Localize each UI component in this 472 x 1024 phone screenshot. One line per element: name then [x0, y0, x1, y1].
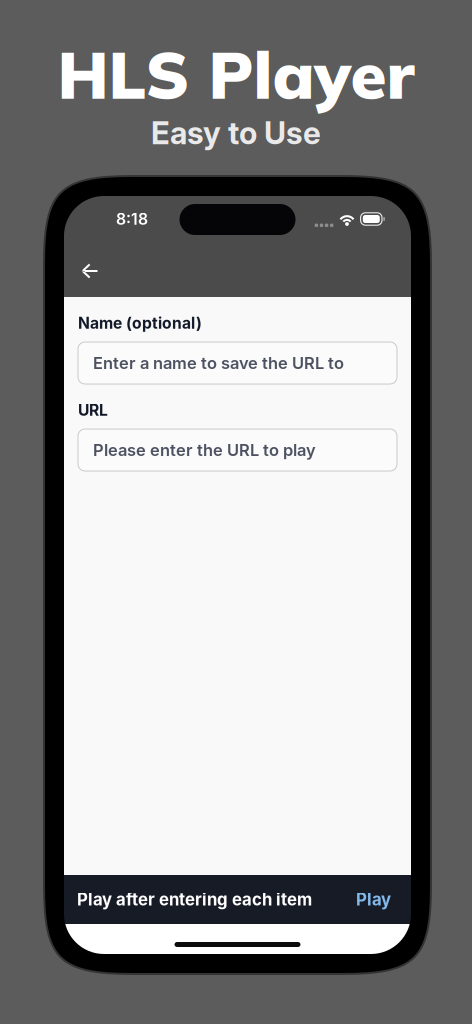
staticText: URL: [78, 401, 108, 419]
button[interactable]: Back: [68, 249, 112, 293]
button[interactable]: Please enter the URL to play: [78, 429, 397, 471]
staticText: Please enter the URL to play: [93, 440, 316, 460]
staticText: Play: [356, 889, 391, 910]
staticText: 8:18: [116, 209, 148, 228]
staticText: Enter a name to save the URL to: [93, 353, 344, 373]
staticText: Play after entering each item: [77, 889, 312, 910]
staticText: HLS Player: [57, 33, 414, 115]
staticText: Name (optional): [78, 314, 202, 332]
staticText: Easy to Use: [151, 114, 321, 151]
button[interactable]: Enter a name to save the URL to: [78, 342, 397, 384]
button[interactable]: Play: [356, 889, 391, 910]
